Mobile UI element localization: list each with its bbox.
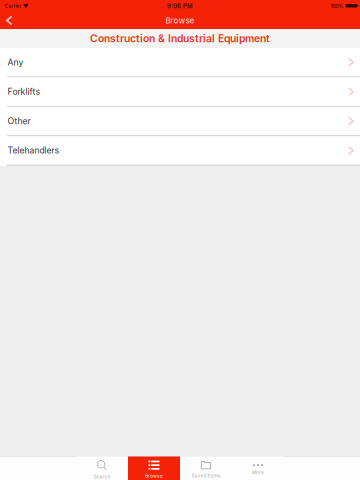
button[interactable]: Saved Items xyxy=(180,456,232,480)
button[interactable]: Telehandlers xyxy=(0,136,360,166)
button[interactable]: Other xyxy=(0,107,360,136)
button[interactable]: Browse xyxy=(128,456,180,480)
button[interactable]: Search xyxy=(76,456,128,480)
staticText: Carrier xyxy=(4,3,21,9)
staticText: Other xyxy=(7,116,30,126)
staticText: More xyxy=(252,470,264,475)
staticText: Saved Items xyxy=(191,473,220,478)
staticText: Construction & Industrial Equipment xyxy=(90,32,270,45)
button[interactable]: Forklifts xyxy=(0,77,360,107)
staticText: Telehandlers xyxy=(7,145,59,156)
staticText: 100% xyxy=(330,3,343,9)
staticText: Search xyxy=(93,474,110,479)
staticText: Forklifts xyxy=(7,86,40,97)
staticText: Browse xyxy=(165,16,194,25)
staticText: Browse xyxy=(145,473,163,479)
button[interactable]: More xyxy=(232,456,284,480)
staticText: 9:06 PM xyxy=(167,2,193,10)
staticText: Any xyxy=(7,57,23,67)
button[interactable]: Back xyxy=(0,12,34,29)
button[interactable]: Any xyxy=(0,48,360,77)
